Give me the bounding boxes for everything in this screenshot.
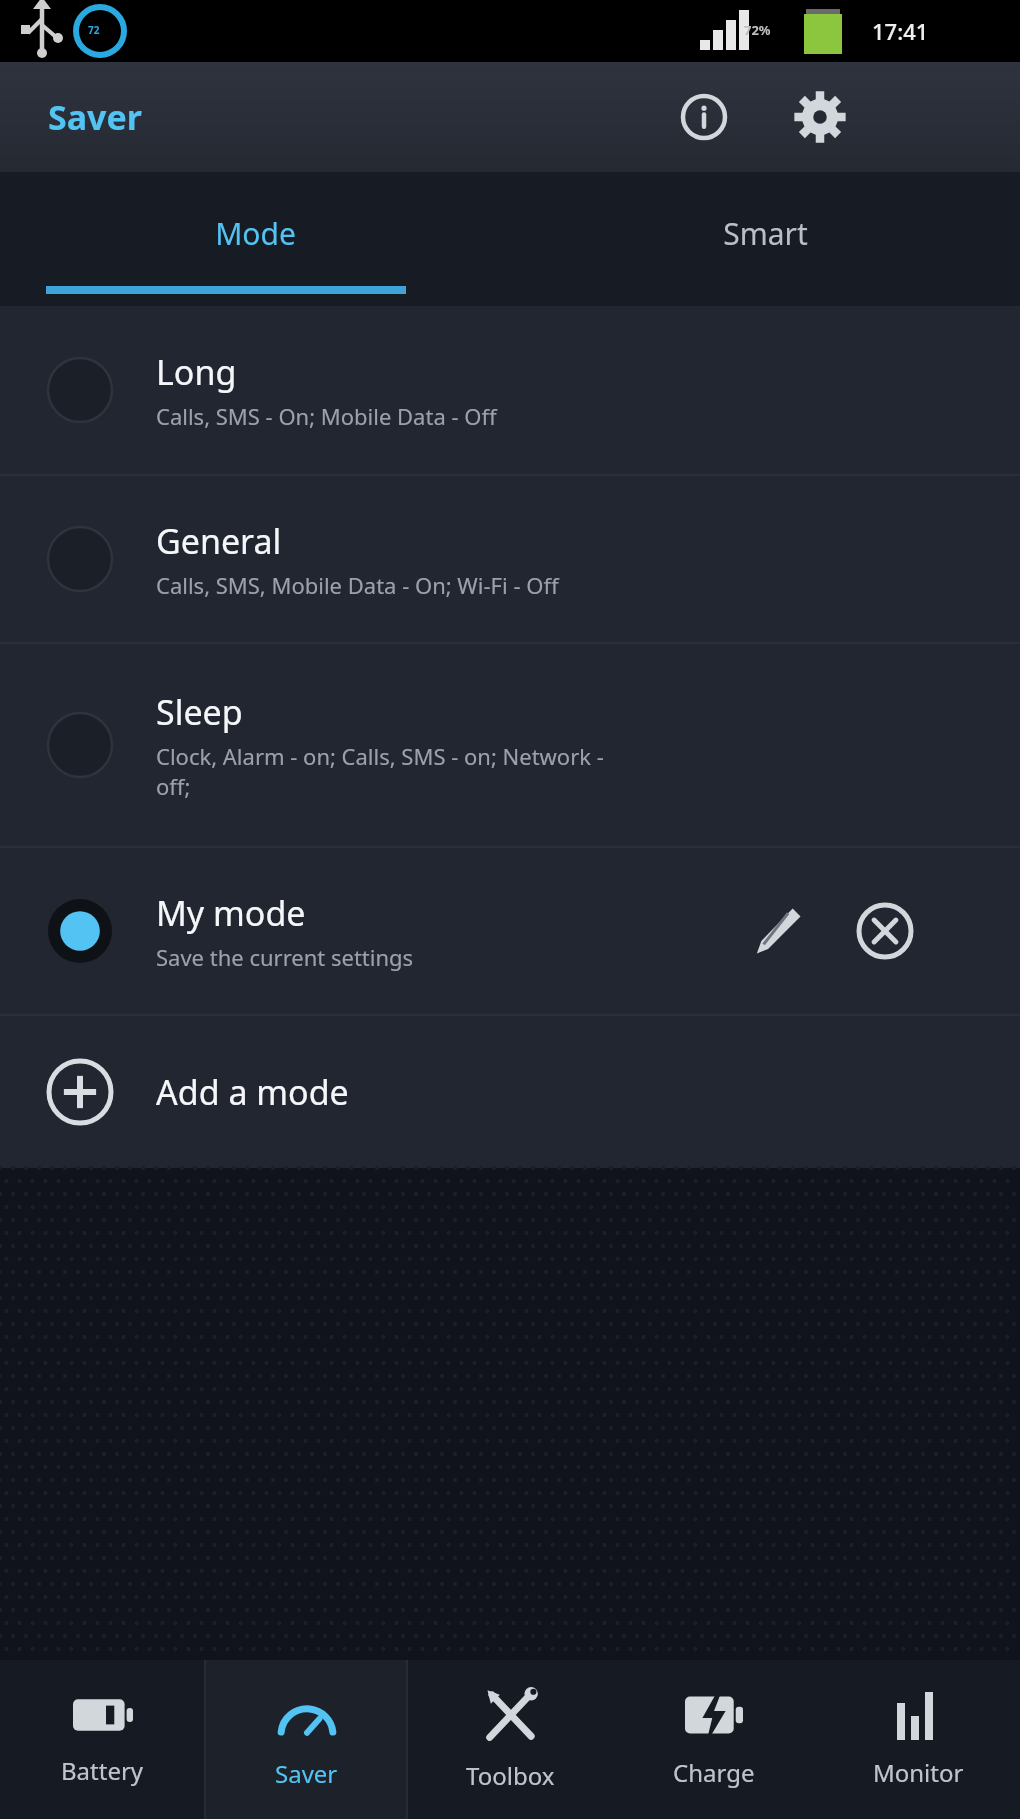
staticText: Sleep [156, 689, 243, 735]
button[interactable]: Battery [0, 1660, 204, 1819]
button[interactable]: Delete mode [842, 888, 928, 974]
button[interactable]: Mode [0, 172, 510, 306]
staticText: Charge [673, 1756, 755, 1789]
staticText: Monitor [873, 1756, 964, 1789]
staticText: Toolbox [466, 1759, 555, 1792]
staticText: Saver [48, 94, 143, 140]
staticText: Calls, SMS, Mobile Data - On; Wi-Fi - Of… [156, 570, 559, 600]
staticText: Calls, SMS - On; Mobile Data - Off [156, 401, 497, 431]
staticText: 17:41 [872, 16, 929, 46]
button[interactable]: Settings [776, 73, 864, 161]
button[interactable]: Long [0, 306, 1020, 474]
button[interactable]: Saver [204, 1660, 408, 1819]
staticText: Clock, Alarm - on; Calls, SMS - on; Netw… [156, 741, 604, 801]
button[interactable]: Info [660, 73, 748, 161]
staticText: Long [156, 349, 237, 395]
staticText: 72% [744, 21, 771, 39]
button[interactable]: Add a mode [0, 1016, 1020, 1168]
staticText: Saver [275, 1757, 338, 1790]
staticText: Save the current settings [156, 942, 414, 972]
button[interactable]: Smart [510, 172, 1020, 306]
button[interactable]: Edit mode [734, 888, 820, 974]
button[interactable]: My mode [0, 848, 1020, 1014]
staticText: Mode [215, 213, 296, 254]
staticText: Add a mode [156, 1069, 349, 1115]
button[interactable]: Sleep [0, 644, 1020, 846]
staticText: My mode [156, 890, 306, 936]
staticText: General [156, 518, 282, 564]
staticText: Smart [723, 213, 808, 254]
button[interactable]: General [0, 476, 1020, 642]
staticText: Battery [61, 1754, 144, 1787]
button[interactable]: Charge [612, 1660, 816, 1819]
staticText: 72 [88, 23, 100, 37]
button[interactable]: Monitor [816, 1660, 1020, 1819]
button[interactable]: Toolbox [408, 1660, 612, 1819]
